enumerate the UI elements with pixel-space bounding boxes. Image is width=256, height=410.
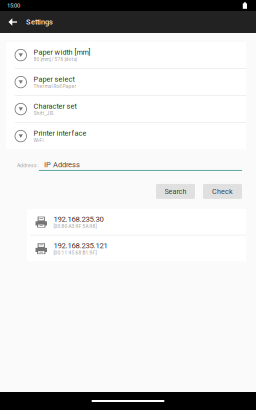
staticText: Search [164, 187, 186, 196]
button[interactable]: 192.168.235.121 [27, 235, 246, 261]
staticText: Settings [26, 18, 53, 26]
staticText: Address : [17, 163, 39, 168]
staticText: Thermal Roll Paper [33, 84, 76, 89]
staticText: Character set [33, 102, 76, 111]
staticText: IP Address [44, 160, 80, 169]
button[interactable]: Character set [6, 96, 246, 123]
button[interactable]: Search [156, 184, 195, 199]
button[interactable]: 192.168.235.30 [27, 209, 246, 235]
button[interactable]: Paper select [6, 69, 246, 96]
staticText: Paper width [mm] [33, 48, 90, 57]
button[interactable]: Printer interface [6, 123, 246, 149]
button[interactable]: Back [0, 11, 26, 33]
button[interactable]: Check [203, 184, 242, 199]
staticText: Wi-Fi [33, 138, 43, 143]
button[interactable]: Paper width [mm] [6, 42, 246, 69]
staticText: Check [212, 187, 233, 196]
staticText: 192.168.235.121 [53, 241, 107, 250]
staticText: Paper select [33, 75, 74, 84]
staticText: 192.168.235.30 [53, 214, 103, 224]
staticText: [00:80:A3:9F:5A:98] [53, 223, 96, 229]
staticText: 80 [mm] / 576 [dots] [33, 57, 76, 62]
staticText: [00:11:45:68:B1:9F] [53, 250, 96, 256]
staticText: Shift_JIS [33, 111, 53, 116]
staticText: 15:00 [7, 2, 20, 9]
staticText: Printer interface [33, 129, 86, 138]
